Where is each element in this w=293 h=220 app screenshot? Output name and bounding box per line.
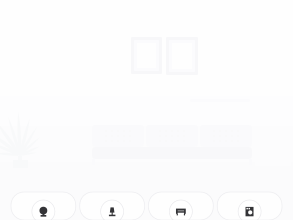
button[interactable]: Sofa (148, 192, 213, 220)
button[interactable]: Lamp (80, 192, 145, 220)
button[interactable]: Appliance (217, 192, 282, 220)
button[interactable]: Camera (11, 192, 76, 220)
